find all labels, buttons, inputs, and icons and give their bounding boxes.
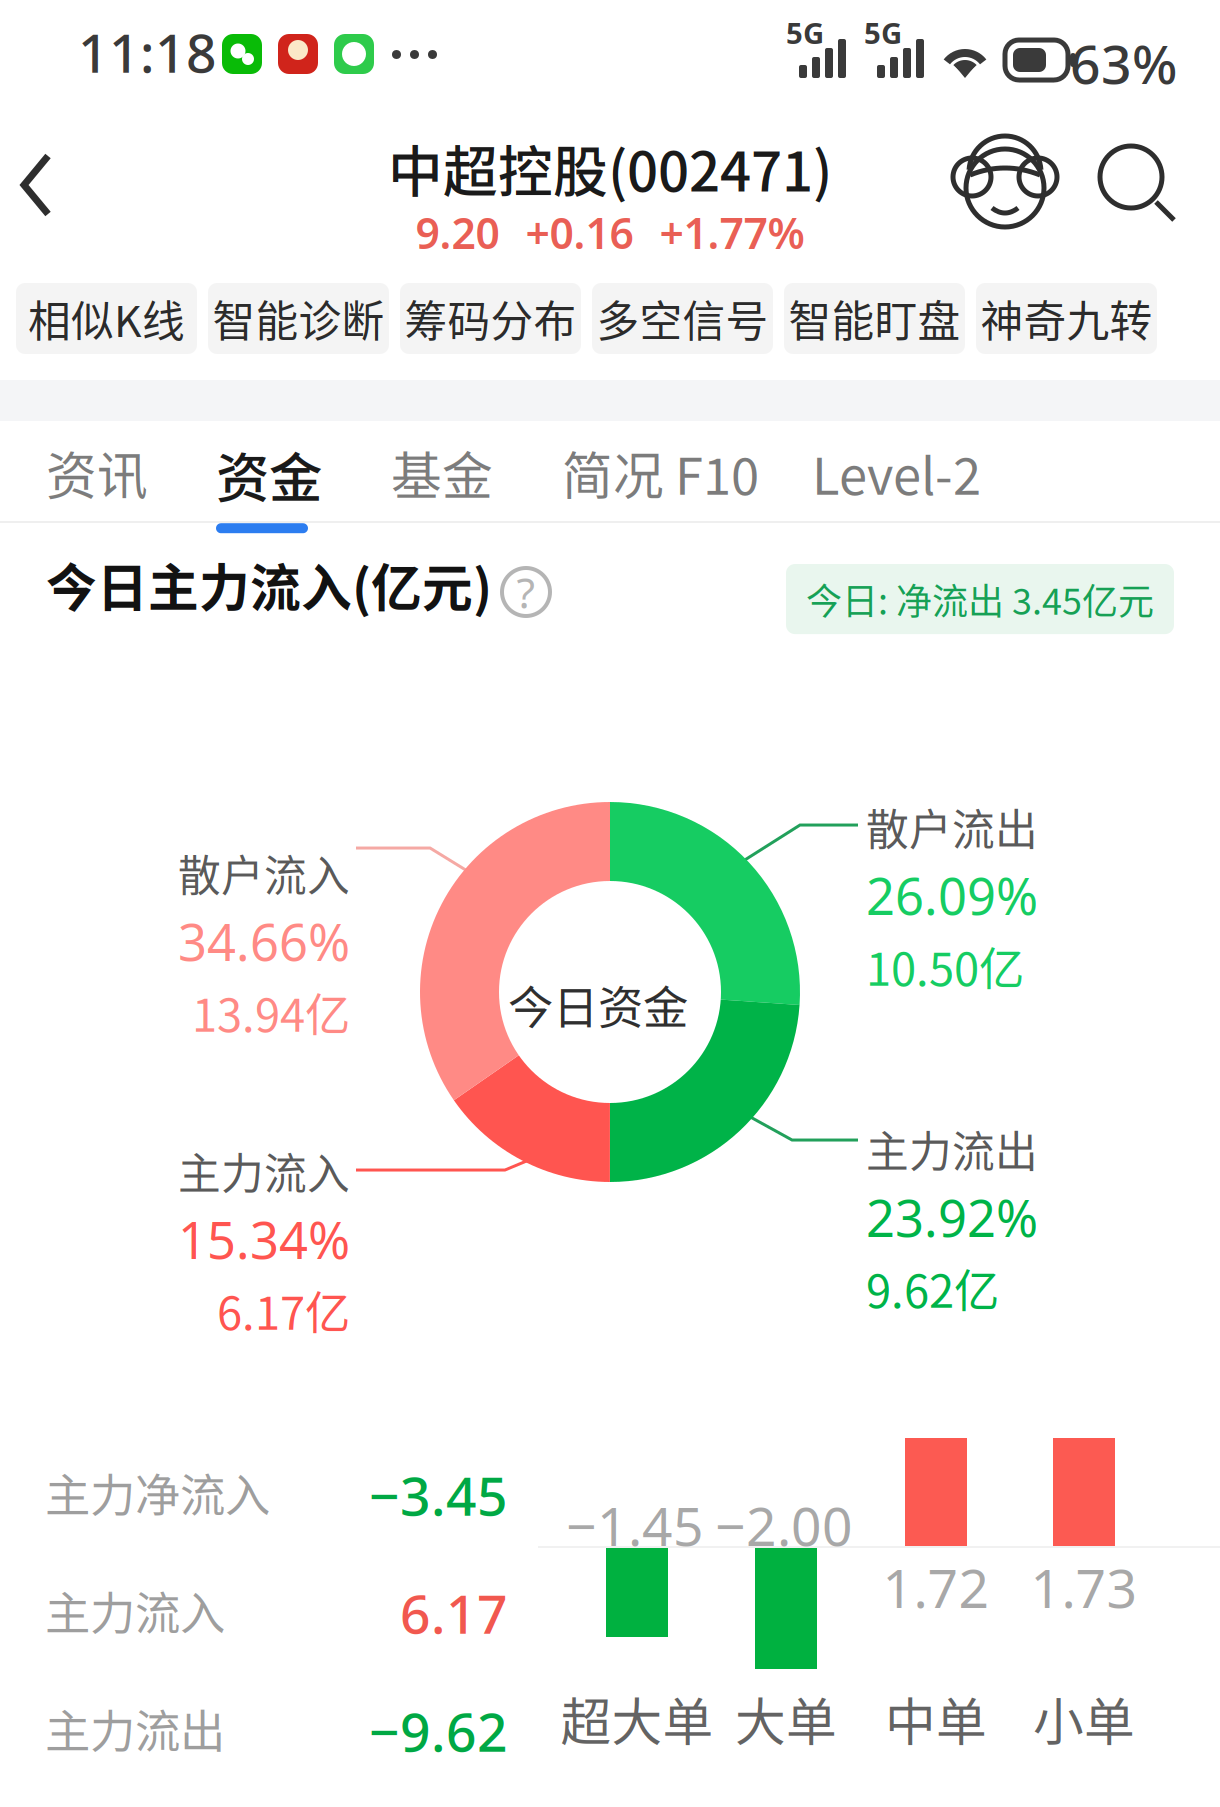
button[interactable]: 简况 F10 [562, 436, 759, 528]
staticText: 大单 [735, 1682, 837, 1755]
staticText: 基金 [391, 436, 493, 509]
staticText: 26.09% [866, 862, 1038, 929]
staticText: 中超控股(002471) [388, 128, 832, 207]
staticText: 神奇九转 [980, 288, 1152, 349]
button[interactable]: Search [1082, 128, 1192, 238]
staticText: +1.77% [659, 204, 804, 261]
staticText: 63% [1070, 28, 1177, 99]
staticText: Level-2 [812, 436, 981, 509]
button[interactable]: Account [950, 128, 1060, 238]
staticText: 主力流入 [178, 1140, 350, 1202]
staticText: 智能诊断 [212, 288, 384, 349]
button[interactable]: 今日: 净流出 3.45亿元 [786, 564, 1174, 634]
staticText: 今日主力流入(亿元) [46, 548, 492, 621]
staticText: 10.50亿 [866, 933, 1024, 999]
staticText: 11:18 [78, 17, 217, 87]
staticText: 筹码分布 [404, 288, 576, 349]
button[interactable]: 筹码分布 [400, 283, 581, 354]
staticText: 1.73 [1030, 1552, 1137, 1623]
staticText: 5G [864, 13, 902, 52]
staticText: 6.17亿 [217, 1277, 350, 1343]
staticText: 34.66% [178, 908, 350, 975]
staticText: 1.72 [882, 1552, 989, 1623]
staticText: 主力流出 [45, 1696, 225, 1761]
button[interactable]: 基金 [391, 436, 493, 528]
staticText: 资金 [216, 436, 322, 513]
button[interactable]: 智能盯盘 [784, 283, 965, 354]
staticText: 主力流出 [866, 1118, 1038, 1180]
button[interactable]: 资金 [216, 436, 322, 528]
button[interactable]: Help [496, 562, 556, 622]
staticText: 23.92% [866, 1184, 1038, 1251]
staticText: 今日资金 [508, 972, 688, 1038]
staticText: +0.16 [525, 204, 633, 261]
staticText: −1.45 [566, 1490, 704, 1561]
staticText: 相似K线 [28, 288, 185, 349]
staticText: 13.94亿 [192, 979, 350, 1045]
button[interactable]: 多空信号 [592, 283, 773, 354]
button[interactable]: 神奇九转 [976, 283, 1157, 354]
staticText: 小单 [1033, 1682, 1135, 1755]
staticText: 超大单 [560, 1682, 713, 1755]
staticText: 中单 [885, 1682, 987, 1755]
staticText: 智能盯盘 [788, 288, 960, 349]
staticText: 散户流入 [178, 842, 350, 904]
staticText: 9.62亿 [866, 1255, 999, 1321]
button[interactable]: Back [14, 130, 124, 240]
button[interactable]: Level-2 [812, 436, 981, 528]
staticText: 6.17 [400, 1578, 508, 1648]
button[interactable]: 相似K线 [16, 283, 197, 354]
staticText: 今日: 净流出 3.45亿元 [806, 573, 1154, 625]
button[interactable]: 智能诊断 [208, 283, 389, 354]
staticText: 5G [786, 13, 824, 52]
staticText: −2.00 [715, 1490, 853, 1561]
staticText: ? [516, 564, 535, 620]
staticText: 主力净流入 [45, 1460, 270, 1525]
staticText: 多空信号 [596, 288, 768, 349]
staticText: 主力流入 [45, 1578, 225, 1643]
button[interactable]: 资讯 [46, 436, 148, 528]
staticText: 9.20 [415, 204, 499, 261]
staticText: 简况 F10 [562, 436, 759, 509]
staticText: 资讯 [46, 436, 148, 509]
staticText: −9.62 [369, 1696, 508, 1766]
staticText: −3.45 [369, 1460, 508, 1530]
staticText: 15.34% [178, 1206, 350, 1273]
staticText: 散户流出 [866, 796, 1038, 858]
